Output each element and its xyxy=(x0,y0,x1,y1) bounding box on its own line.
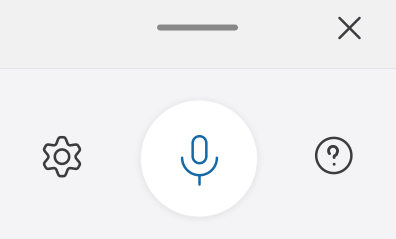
button[interactable]: Start dictation xyxy=(140,100,257,217)
button[interactable]: Settings xyxy=(34,129,90,185)
button[interactable]: Help xyxy=(306,127,362,183)
button[interactable]: Close xyxy=(327,6,371,50)
